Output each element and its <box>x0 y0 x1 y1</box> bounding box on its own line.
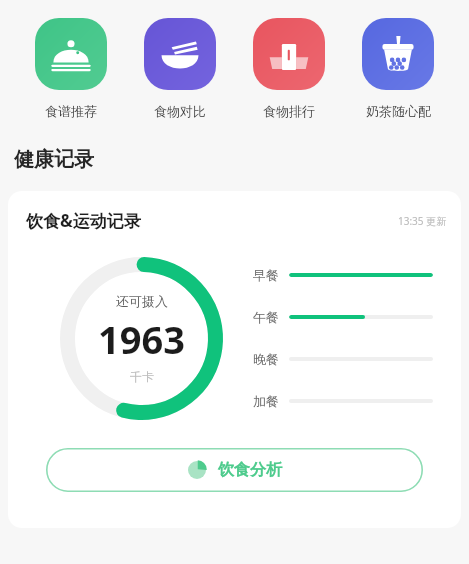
staticText: 健康记录 <box>14 147 94 172</box>
button[interactable]: 早餐 <box>253 267 433 283</box>
button[interactable]: 晚餐 <box>253 351 433 367</box>
staticText: 早餐 <box>253 267 279 283</box>
staticText: 1963 <box>98 313 185 365</box>
staticText: 饮食&运动记录 <box>26 209 141 232</box>
button[interactable]: 饮食&运动记录 <box>8 191 461 528</box>
staticText: 13:35 更新 <box>398 214 447 228</box>
staticText: 奶茶随心配 <box>366 103 431 119</box>
staticText: 食物对比 <box>154 103 206 119</box>
button[interactable]: 饮食分析 <box>46 448 423 492</box>
staticText: 加餐 <box>253 393 279 409</box>
button[interactable]: 食谱推荐 <box>23 18 119 119</box>
button[interactable]: 食物对比 <box>132 18 228 119</box>
staticText: 千卡 <box>130 369 154 384</box>
button[interactable]: 午餐 <box>253 309 433 325</box>
staticText: 午餐 <box>253 309 279 325</box>
staticText: 晚餐 <box>253 351 279 367</box>
staticText: 饮食分析 <box>218 460 282 480</box>
button[interactable]: 奶茶随心配 <box>350 18 446 119</box>
staticText: 还可摄入 <box>116 293 168 309</box>
staticText: 食谱推荐 <box>45 103 97 119</box>
staticText: 食物排行 <box>263 103 315 119</box>
button[interactable]: 食物排行 <box>241 18 337 119</box>
button[interactable]: 加餐 <box>253 393 433 409</box>
